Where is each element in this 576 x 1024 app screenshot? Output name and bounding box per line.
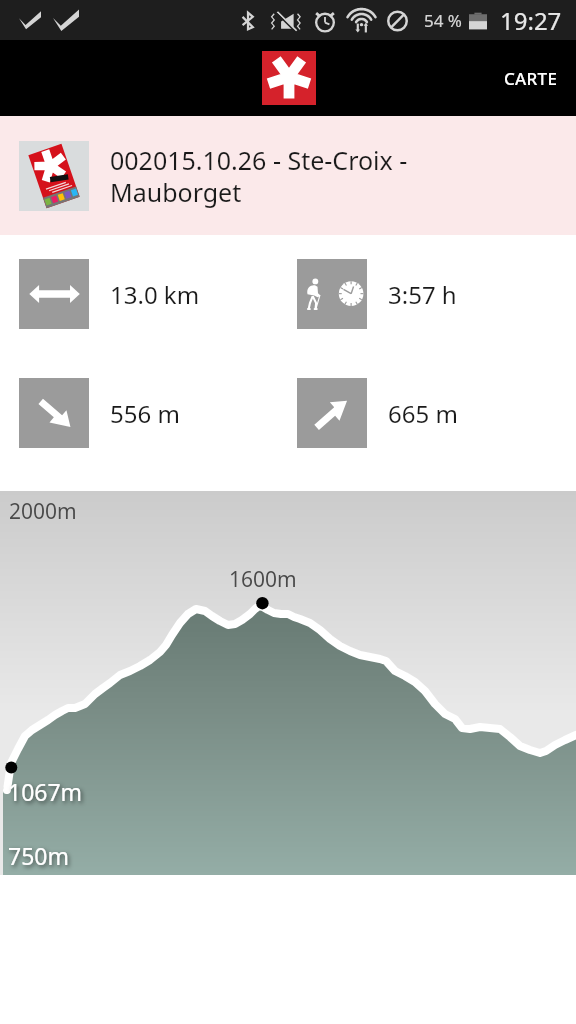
staticText: 1600m	[229, 565, 297, 594]
staticText: 002015.10.26 - Ste-Croix - Mauborget	[110, 143, 440, 209]
other: Distance	[19, 259, 89, 329]
button[interactable]: Duration	[278, 259, 576, 329]
staticText: 665 m	[388, 397, 458, 430]
staticText: 750m	[8, 840, 69, 871]
staticText: 3:57 h	[388, 278, 457, 311]
button[interactable]: 002015.10.26 - Ste-Croix - Mauborget	[0, 116, 576, 235]
staticText: 54 %	[424, 9, 462, 32]
staticText: CARTE	[504, 67, 558, 90]
staticText: 556 m	[110, 397, 180, 430]
staticText: 2000m	[9, 497, 77, 526]
button[interactable]: CARTE	[486, 40, 576, 116]
button[interactable]: Distance	[0, 259, 278, 329]
staticText: 13.0 km	[110, 278, 200, 311]
other: Duration	[297, 259, 367, 329]
staticText: 1067m	[8, 776, 83, 807]
staticText: 19:27	[500, 4, 562, 37]
other: Ascent	[297, 378, 367, 448]
button[interactable]: Descent	[0, 378, 278, 448]
button[interactable]: Ascent	[278, 378, 576, 448]
button[interactable]: Home	[262, 51, 316, 105]
other: Descent	[19, 378, 89, 448]
